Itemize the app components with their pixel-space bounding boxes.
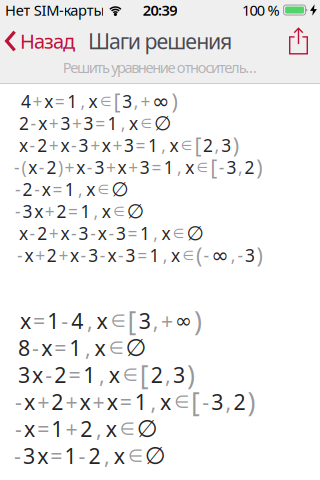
staticText: - [71,134,77,157]
staticText: + [49,112,59,135]
staticText: + [35,244,45,267]
staticText: - [71,222,77,245]
staticText: + [49,222,59,245]
staticText: x [24,415,35,443]
staticText: x [19,134,28,157]
staticText: 3 [124,134,134,157]
staticText: , [215,134,220,157]
staticText: Назад [20,28,75,54]
staticText: 1 [47,307,59,335]
staticText: 3 [122,90,132,113]
staticText: x [89,90,98,113]
staticText: ∈ [108,338,123,358]
staticText: + [106,156,116,179]
staticText: + [93,388,105,416]
staticText: ∅ [111,178,128,201]
staticText: 1 [83,361,95,389]
staticText: ∅ [127,200,144,223]
staticText: - [237,244,243,267]
staticText: = [68,361,80,389]
staticText: ) [187,357,195,392]
staticText: ∈ [110,311,125,331]
staticText: 3 [60,112,70,135]
staticText: ) [172,87,178,115]
staticText: x [106,415,117,443]
staticText: 2 [88,442,100,470]
staticText: , [163,244,168,267]
staticText: 3 [140,156,150,179]
staticText: , [99,361,105,389]
staticText: ∅ [126,334,147,361]
staticText: ∈ [197,160,209,175]
staticText: x [60,222,69,245]
staticText: = [68,200,78,223]
staticText: 2 [37,134,47,157]
staticText: [ [210,153,217,181]
staticText: x [70,244,79,267]
staticText: + [37,388,49,416]
staticText: ∈ [182,248,194,263]
staticText: 2 [203,134,213,157]
staticText: - [90,222,96,245]
staticText: 4 [21,90,31,113]
staticText: - [34,178,40,201]
staticText: , [121,112,126,135]
staticText: 1 [148,134,158,157]
staticText: 2 [47,244,57,267]
staticText: = [120,388,132,416]
staticText: 2 [19,112,29,135]
staticText: [ [114,87,121,115]
staticText: 3 [79,222,89,245]
staticText: 3 [116,222,126,245]
staticText: 2 [80,415,92,443]
staticText: + [45,200,55,223]
staticText: + [140,90,150,113]
staticText: x [79,388,90,416]
staticText: x [107,244,116,267]
staticText: ∅ [186,222,203,245]
staticText: ∞ [175,309,192,332]
button[interactable]: Решить уравнение относитель… [63,62,257,83]
staticText: 3 [94,156,104,179]
staticText: ) [233,131,239,159]
staticText: 1 [80,200,90,223]
staticText: = [50,442,62,470]
staticText: [ [194,131,201,159]
staticText: ∈ [140,116,152,131]
staticText: 3 [211,388,223,416]
staticText: = [136,134,146,157]
staticText: , [231,244,236,267]
button[interactable]: Назад [0,28,75,54]
staticText: + [161,307,173,335]
staticText: - [31,112,37,135]
staticText: , [161,134,166,157]
staticText: - [78,442,85,470]
staticText: , [96,415,102,443]
staticText: , [94,200,99,223]
staticText: - [118,244,124,267]
staticText: x [25,244,34,267]
staticText: 2 [56,200,66,223]
staticText: 3 [88,244,98,267]
staticText: 2 [51,388,63,416]
staticText: x [86,178,95,201]
staticText: + [65,415,77,443]
button[interactable]: Share [289,27,320,54]
staticText: - [39,156,45,179]
staticText: - [202,388,209,416]
staticText: ∅ [137,415,158,442]
staticText: 3 [226,156,236,179]
staticText: x [37,442,48,470]
staticText: + [65,156,75,179]
staticText: 4 [71,307,83,335]
staticText: , [85,334,91,362]
staticText: + [58,244,68,267]
staticText: ) [58,156,63,179]
staticText: + [112,134,122,157]
staticText: x [20,307,31,335]
staticText: = [54,334,66,362]
staticText: , [87,307,93,335]
staticText: , [165,361,171,389]
staticText: - [204,244,210,267]
staticText: x [41,334,52,362]
